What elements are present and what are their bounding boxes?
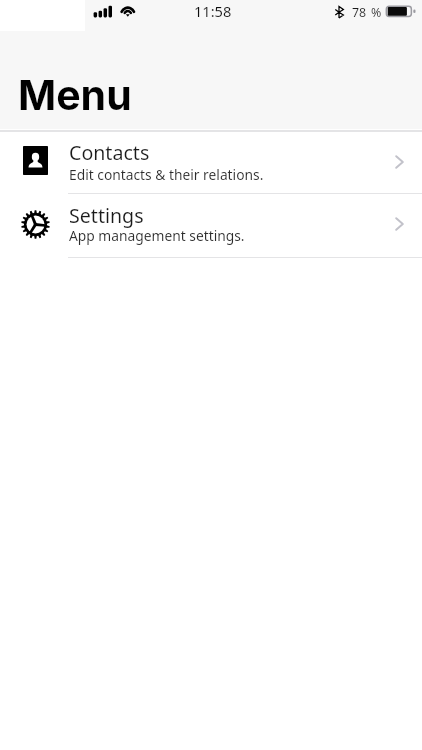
staticText: Contacts [69, 139, 150, 166]
button[interactable]: Contacts [0, 132, 422, 194]
button[interactable]: Settings [0, 194, 422, 258]
staticText: % [371, 4, 382, 21]
staticText: Menu [18, 70, 132, 120]
other: Open Settings [368, 194, 422, 257]
other: Open Contacts [368, 132, 422, 193]
staticText: Settings [69, 202, 144, 229]
staticText: Edit contacts & their relations. [69, 165, 264, 184]
staticText: App management settings. [69, 226, 245, 245]
staticText: 78 [352, 4, 367, 21]
staticText: 11:58 [194, 1, 232, 21]
